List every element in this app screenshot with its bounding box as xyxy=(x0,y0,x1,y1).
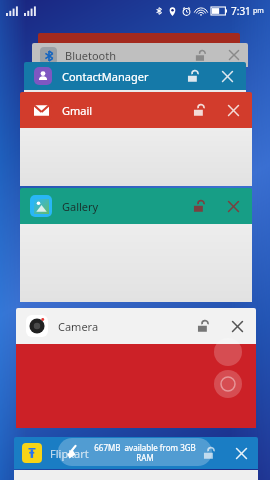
button[interactable]: Flipkart xyxy=(14,437,258,469)
staticText: 667MB available from 3GB RAM xyxy=(84,442,206,463)
button[interactable]: Shutter xyxy=(16,344,256,428)
button[interactable]: Lock Gallery xyxy=(190,197,208,215)
button[interactable]: 667MB available from 3GB RAM xyxy=(58,438,212,466)
button[interactable]: Close Flipkart xyxy=(232,444,250,462)
button[interactable]: Lock Gmail xyxy=(190,101,208,119)
button[interactable]: Shutter xyxy=(214,338,242,366)
button[interactable]: ContactManager xyxy=(24,62,246,90)
button[interactable]: Bluetooth xyxy=(32,43,248,67)
staticText: ContactManager xyxy=(62,69,149,84)
staticText: Gallery xyxy=(62,199,99,214)
staticText: 7:31 xyxy=(231,4,251,18)
button[interactable]: Close Gallery xyxy=(224,197,242,215)
button[interactable] xyxy=(38,33,240,49)
staticText: pm xyxy=(253,6,264,16)
staticText: Camera xyxy=(58,319,99,334)
button[interactable] xyxy=(20,224,252,302)
staticText: Bluetooth xyxy=(65,48,117,63)
button[interactable]: Camera xyxy=(16,308,256,344)
staticText: Gmail xyxy=(62,103,93,118)
button[interactable]: Lock Flipkart xyxy=(200,444,218,462)
button[interactable]: Close ContactManager xyxy=(218,67,236,85)
button[interactable]: Gmail xyxy=(20,92,252,128)
button[interactable] xyxy=(24,90,246,94)
button[interactable]: Close Gmail xyxy=(224,101,242,119)
button[interactable] xyxy=(20,128,252,186)
button[interactable]: Switch camera xyxy=(214,370,242,398)
staticText: Flipkart xyxy=(50,446,89,461)
button[interactable]: Gallery xyxy=(20,188,252,224)
button[interactable]: Lock Camera xyxy=(194,317,212,335)
button[interactable]: Lock ContactManager xyxy=(184,67,202,85)
button[interactable]: Close Camera xyxy=(228,317,246,335)
